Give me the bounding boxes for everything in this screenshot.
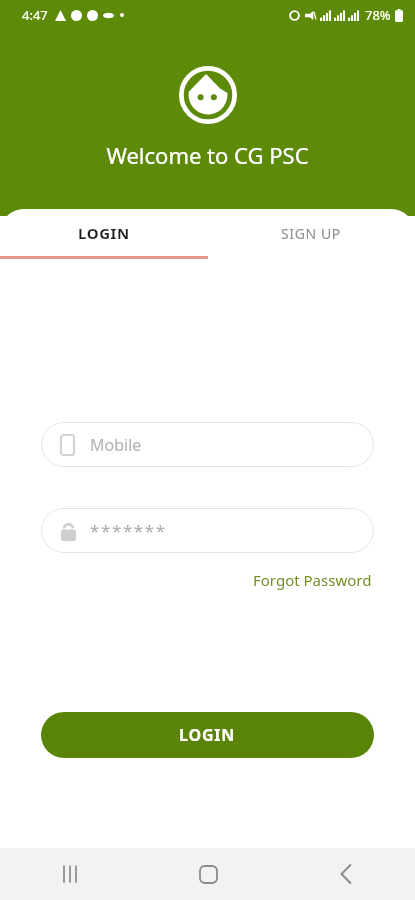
staticText: 78%: [365, 6, 391, 24]
button[interactable]: Back: [277, 848, 415, 900]
staticText: 4:47: [22, 6, 48, 24]
button[interactable]: LOGIN: [0, 209, 207, 257]
button[interactable]: SIGN UP: [207, 209, 415, 257]
staticText: Mobile: [90, 434, 142, 456]
button[interactable]: Home: [139, 848, 277, 900]
button[interactable]: Forgot Password: [251, 567, 374, 593]
staticText: LOGIN: [179, 724, 236, 746]
staticText: SIGN UP: [281, 224, 341, 243]
button[interactable]: LOGIN: [41, 712, 374, 758]
button[interactable]: *******: [41, 508, 374, 553]
staticText: Forgot Password: [253, 570, 372, 590]
staticText: LOGIN: [78, 223, 130, 243]
staticText: Welcome to CG PSC: [106, 140, 309, 170]
button[interactable]: Mobile: [41, 422, 374, 467]
button[interactable]: Recent apps: [0, 848, 139, 900]
staticText: *******: [90, 519, 167, 542]
